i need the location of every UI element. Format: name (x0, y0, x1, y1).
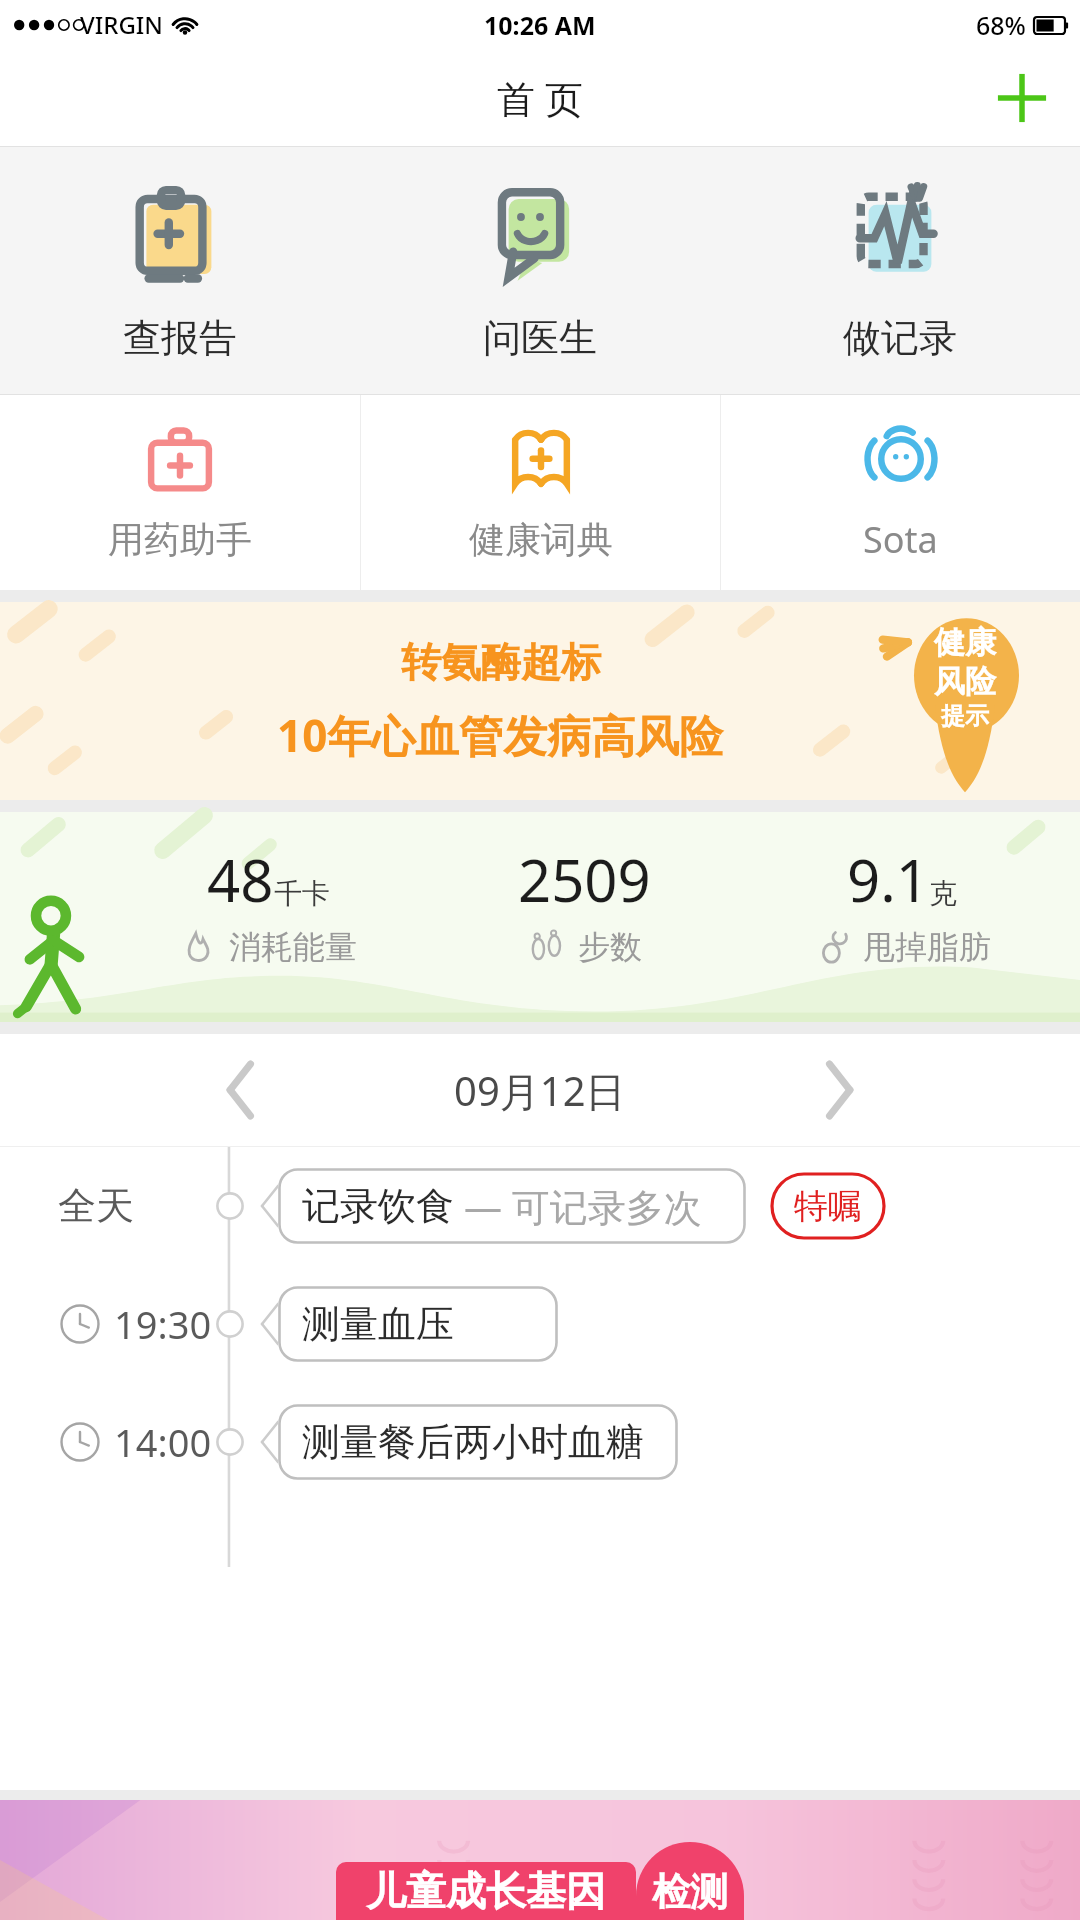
staticText: 检测 (652, 1868, 728, 1916)
button[interactable]: Previous day (205, 1054, 277, 1126)
staticText: 风险 (934, 662, 996, 701)
staticText: 全天 (58, 1182, 134, 1230)
staticText: 2509 (518, 840, 651, 919)
staticText: 19:30 (114, 1298, 212, 1350)
staticText: 健康 (934, 623, 996, 662)
staticText: 记录饮食 (302, 1182, 454, 1230)
staticText: 消耗能量 (229, 927, 357, 967)
button[interactable]: 做记录 (720, 147, 1080, 394)
button[interactable]: 特嘱 (770, 1172, 886, 1240)
staticText: — 可记录多次 (454, 1180, 702, 1232)
button[interactable]: 查报告 (0, 147, 360, 394)
staticText: 转氨酶超标 (401, 637, 601, 687)
staticText: 10:26 AM (484, 8, 596, 42)
staticText: 甩掉脂肪 (863, 927, 991, 967)
button[interactable]: 健康词典 (361, 395, 720, 590)
staticText: 48 (207, 840, 274, 919)
button[interactable]: 儿童成长基因 (0, 1800, 1080, 1920)
staticText: 儿童成长基因 (366, 1866, 606, 1916)
staticText: 用药助手 (108, 517, 252, 562)
staticText: 测量血压 (302, 1300, 454, 1348)
staticText: 首 页 (497, 72, 583, 124)
staticText: Sota (863, 515, 938, 564)
staticText: 问医生 (483, 314, 597, 362)
button[interactable]: 全天 (0, 1147, 1080, 1265)
button[interactable]: 19:30 (0, 1265, 1080, 1383)
staticText: 特嘱 (794, 1185, 862, 1228)
button[interactable]: Add (986, 62, 1058, 134)
staticText: 步数 (578, 927, 642, 967)
button[interactable]: 问医生 (360, 147, 720, 394)
staticText: 千卡 (274, 876, 330, 911)
button[interactable]: 48 (0, 812, 1080, 1022)
button[interactable]: Sota (721, 395, 1080, 590)
button[interactable]: 转氨酶超标 (0, 602, 1080, 800)
staticText: 查报告 (123, 314, 237, 362)
button[interactable]: 14:00 (0, 1383, 1080, 1501)
button[interactable]: 用药助手 (0, 395, 360, 590)
staticText: 提示 (941, 701, 989, 731)
staticText: 14:00 (114, 1416, 212, 1468)
staticText: 68% (976, 8, 1026, 42)
staticText: 9.1 (847, 840, 929, 919)
staticText: 做记录 (843, 314, 957, 362)
staticText: 健康词典 (469, 517, 613, 562)
staticText: 10年心血管发病高风险 (277, 705, 724, 765)
staticText: VIRGIN (80, 8, 163, 41)
staticText: 克 (929, 876, 957, 911)
staticText: 09月12日 (454, 1063, 626, 1118)
staticText: 测量餐后两小时血糖 (302, 1418, 644, 1466)
button[interactable]: Next day (803, 1054, 875, 1126)
